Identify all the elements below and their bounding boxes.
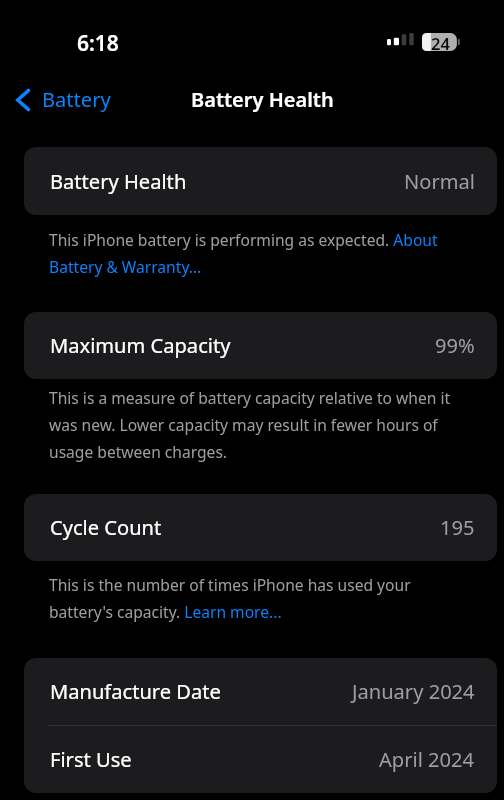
staticText: 6:18 <box>77 29 119 58</box>
button[interactable]: Battery Health <box>24 147 497 215</box>
button[interactable]: Cycle Count <box>24 494 497 561</box>
staticText: Normal <box>404 168 475 195</box>
staticText: Battery Health <box>50 168 187 195</box>
staticText: Battery Health <box>191 86 334 113</box>
staticText: This is a measure of battery capacity re… <box>49 387 464 463</box>
button[interactable]: Battery <box>12 80 123 119</box>
staticText: This is the number of times iPhone has u… <box>49 574 464 623</box>
staticText: Cycle Count <box>50 514 162 541</box>
staticText: April 2024 <box>379 746 475 773</box>
staticText: First Use <box>50 746 132 773</box>
staticText: Maximum Capacity <box>50 332 231 359</box>
button[interactable]: Maximum Capacity <box>24 312 497 379</box>
staticText: This iPhone battery is performing as exp… <box>49 229 464 278</box>
staticText: January 2024 <box>352 678 475 705</box>
button[interactable]: First Use <box>24 726 497 793</box>
staticText: Battery <box>42 86 111 113</box>
staticText: 195 <box>440 514 475 541</box>
staticText: 24 <box>431 32 450 54</box>
staticText: 99% <box>435 332 475 359</box>
other: Battery 24 percent <box>422 33 460 55</box>
other: Cellular signal two bars <box>387 33 414 46</box>
staticText: Manufacture Date <box>50 678 221 705</box>
button[interactable]: Manufacture Date <box>24 658 497 725</box>
